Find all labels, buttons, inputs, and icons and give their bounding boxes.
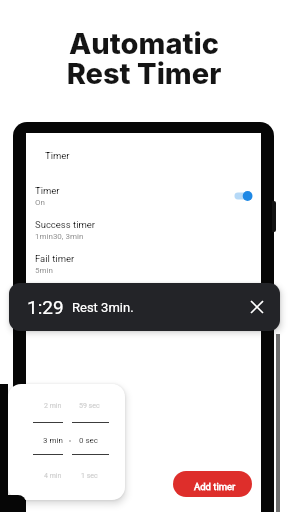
staticText: Add timer: [194, 481, 236, 492]
staticText: Rest 3min.: [72, 300, 134, 315]
staticText: 0 sec: [79, 436, 99, 445]
button[interactable]: Fail timer: [35, 253, 252, 283]
staticText: 1min30, 3min: [35, 232, 84, 241]
button[interactable]: Success timer: [35, 219, 252, 249]
staticText: 3 min: [43, 436, 63, 445]
staticText: 2 min: [44, 402, 62, 410]
staticText: Fail timer: [35, 253, 75, 264]
button[interactable]: Close timer notification: [246, 296, 268, 318]
staticText: Automatic Rest Timer: [0, 26, 288, 91]
staticText: On: [35, 198, 45, 207]
staticText: 4 min: [44, 472, 62, 480]
button[interactable]: Toggle rest timer: [233, 189, 253, 203]
button[interactable]: Timer: [35, 185, 252, 215]
staticText: 59 sec: [79, 402, 100, 410]
button[interactable]: 1:29: [9, 283, 280, 331]
staticText: 1:29: [27, 296, 64, 318]
staticText: Timer: [35, 185, 60, 196]
staticText: Timer: [45, 150, 70, 161]
staticText: 5min: [35, 266, 53, 275]
staticText: 1 sec: [81, 472, 98, 480]
staticText: Success timer: [35, 219, 96, 230]
button[interactable]: Add timer: [173, 471, 252, 497]
